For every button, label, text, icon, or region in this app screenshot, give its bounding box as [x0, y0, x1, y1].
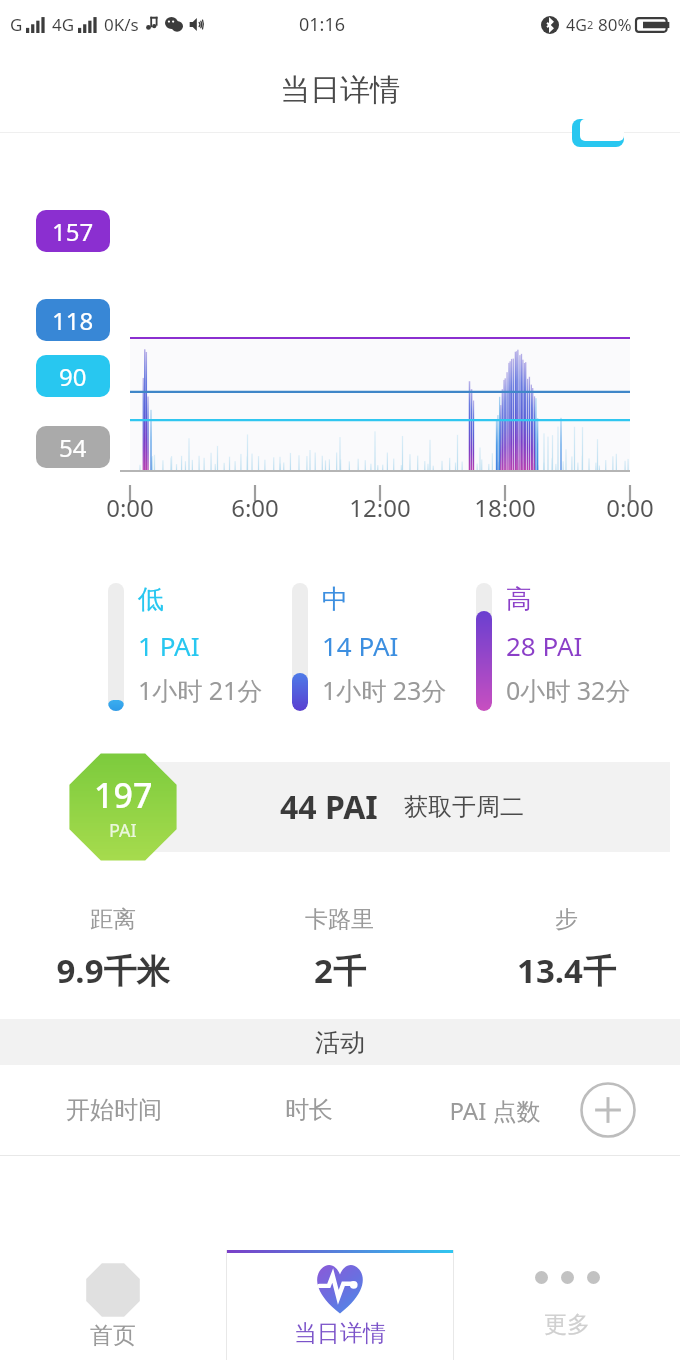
staticText: 2 [587, 17, 594, 32]
button[interactable]: 距离 [0, 905, 226, 993]
staticText: 活动 [315, 1027, 365, 1058]
staticText: 0小时 32分 [506, 673, 631, 707]
staticText: 80% [598, 13, 632, 36]
staticText: PAI [109, 818, 137, 843]
staticText: 1小时 21分 [138, 673, 263, 707]
staticText: 44 PAI [280, 785, 378, 829]
button[interactable]: 低 [108, 583, 292, 711]
button[interactable]: 卡路里 [226, 905, 453, 993]
staticText: 当日详情 [294, 1319, 386, 1348]
staticText: 获取于周二 [404, 792, 524, 822]
staticText: 卡路里 [305, 905, 374, 934]
staticText: 2千 [314, 948, 366, 993]
staticText: 步 [555, 905, 578, 934]
staticText: 12:00 [336, 491, 424, 524]
staticText: 1 PAI [138, 628, 200, 663]
staticText: 18:00 [461, 491, 549, 524]
staticText: 14 PAI [322, 628, 399, 663]
button[interactable]: 44 PAI [110, 762, 670, 852]
button[interactable]: 首页 [0, 1250, 226, 1360]
staticText: 01:16 [299, 12, 346, 37]
staticText: G [10, 13, 23, 36]
staticText: 高 [506, 583, 532, 616]
staticText: 首页 [90, 1321, 136, 1350]
staticText: 54 [59, 431, 87, 464]
staticText: 时长 [216, 1095, 402, 1125]
staticText: 当日详情 [280, 71, 400, 109]
button[interactable]: 当日详情 [227, 1250, 453, 1360]
staticText: 90 [59, 360, 87, 393]
staticText: 距离 [90, 905, 136, 934]
staticText: 低 [138, 583, 164, 616]
staticText: 197 [94, 772, 153, 818]
staticText: 0:00 [586, 491, 674, 524]
button[interactable]: 更多 [454, 1250, 680, 1360]
button[interactable]: 高 [476, 583, 660, 711]
staticText: PAI 点数 [402, 1094, 588, 1127]
staticText: 157 [52, 215, 94, 248]
button[interactable]: 中 [292, 583, 476, 711]
staticText: 28 PAI [506, 628, 583, 663]
staticText: 开始时间 [12, 1095, 216, 1125]
staticText: 13.4千 [517, 948, 616, 993]
staticText: 4G [566, 14, 587, 36]
staticText: 6:00 [211, 491, 299, 524]
staticText: 9.9千米 [56, 948, 170, 993]
staticText: 中 [322, 583, 348, 616]
staticText: 4G [52, 13, 75, 36]
staticText: 0K/s [104, 13, 139, 36]
staticText: 0:00 [86, 491, 174, 524]
staticText: 118 [52, 304, 94, 337]
staticText: 更多 [544, 1310, 590, 1339]
staticText: 1小时 23分 [322, 673, 447, 707]
button[interactable]: 添加 [580, 1082, 636, 1138]
button[interactable]: 步 [453, 905, 680, 993]
